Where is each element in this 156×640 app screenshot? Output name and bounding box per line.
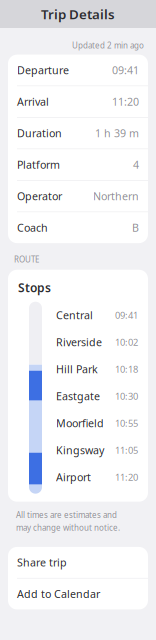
staticText: 10:18 xyxy=(115,363,138,375)
staticText: 1 h 39 m xyxy=(95,126,139,140)
staticText: Stops xyxy=(18,280,51,296)
staticText: Departure xyxy=(17,63,69,77)
button[interactable]: Share trip xyxy=(8,547,148,578)
staticText: B xyxy=(132,220,139,235)
staticText: Trip Details xyxy=(41,5,115,23)
staticText: Coach xyxy=(17,220,48,235)
button[interactable]: Duration xyxy=(8,118,148,149)
staticText: Updated 2 min ago xyxy=(72,40,144,51)
staticText: 11:05 xyxy=(115,444,138,456)
staticText: Central xyxy=(56,308,93,322)
staticText: Operator xyxy=(17,189,62,203)
staticText: Duration xyxy=(17,126,62,140)
button[interactable]: Departure xyxy=(8,55,148,86)
staticText: Add to Calendar xyxy=(17,587,100,601)
staticText: 10:02 xyxy=(115,336,138,348)
button[interactable]: Arrival xyxy=(8,86,148,117)
staticText: Share trip xyxy=(17,555,67,569)
staticText: Arrival xyxy=(17,94,49,109)
staticText: Northern xyxy=(93,189,139,203)
staticText: All times are estimates and xyxy=(16,510,117,520)
staticText: Airport xyxy=(56,470,91,484)
staticText: 11:20 xyxy=(112,94,139,109)
staticText: 11:20 xyxy=(115,471,138,483)
staticText: ROUTE xyxy=(14,254,39,265)
button[interactable]: Platform xyxy=(8,149,148,180)
staticText: Kingsway xyxy=(56,443,104,457)
staticText: Platform xyxy=(17,157,60,172)
staticText: may change without notice. xyxy=(16,522,120,533)
staticText: 10:30 xyxy=(115,390,138,402)
button[interactable]: Add to Calendar xyxy=(8,578,148,609)
staticText: Hill Park xyxy=(56,362,98,376)
staticText: 4 xyxy=(133,157,139,172)
staticText: 09:41 xyxy=(115,309,138,321)
staticText: Eastgate xyxy=(56,389,100,403)
button[interactable]: Coach xyxy=(8,212,148,243)
staticText: 09:41 xyxy=(112,63,139,77)
staticText: Moorfield xyxy=(56,416,104,430)
button[interactable]: Operator xyxy=(8,181,148,212)
staticText: Riverside xyxy=(56,335,102,349)
staticText: 10:55 xyxy=(115,417,138,429)
